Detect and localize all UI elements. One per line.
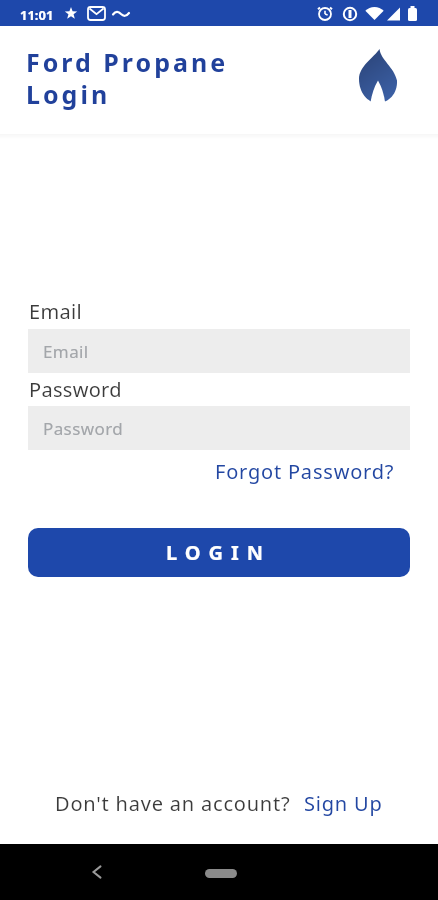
button[interactable] — [90, 864, 104, 880]
staticText: 11:01 — [20, 6, 54, 24]
staticText: LOGIN — [166, 539, 272, 566]
staticText: Don't have an account? — [55, 790, 291, 817]
button[interactable]: LOGIN — [28, 528, 410, 577]
button[interactable]: Password — [28, 406, 410, 450]
staticText: Ford Propane Login — [26, 45, 229, 111]
button[interactable]: Email — [28, 329, 410, 373]
button[interactable]: Sign Up — [304, 790, 383, 817]
button[interactable]: Forgot Password? — [215, 458, 395, 485]
staticText: Email — [43, 340, 89, 363]
staticText: Password — [43, 417, 124, 440]
staticText: Email — [29, 298, 82, 325]
button[interactable] — [205, 869, 237, 878]
staticText: Password — [29, 376, 122, 403]
